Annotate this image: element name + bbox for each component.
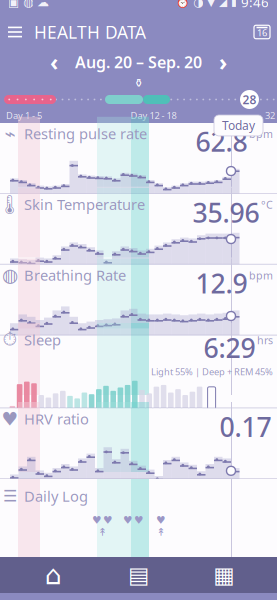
staticText: ›	[219, 47, 227, 77]
staticText: °C	[261, 198, 273, 212]
staticText: 28	[242, 91, 256, 107]
staticText: ⏱	[2, 331, 17, 349]
button[interactable]: ◍	[0, 265, 277, 335]
staticText: ↟	[156, 526, 165, 538]
staticText: hrs	[257, 333, 273, 347]
staticText: 🌡	[0, 194, 22, 215]
staticText: ◢	[219, 0, 227, 8]
staticText: ♥	[92, 514, 102, 526]
staticText: Skin Temperature	[24, 195, 145, 214]
staticText: ♥	[123, 514, 133, 526]
staticText: ☁	[37, 0, 49, 9]
staticText: ⌁	[4, 123, 15, 144]
staticText: 9:46	[241, 0, 269, 11]
staticText: ▮	[231, 0, 237, 8]
button[interactable]: Menu	[0, 15, 34, 49]
staticText: ⏰	[176, 0, 189, 8]
staticText: 62.8	[195, 124, 247, 159]
button[interactable]: Calendar	[196, 559, 252, 591]
staticText: 32	[265, 109, 275, 122]
staticText: 0.17	[219, 409, 271, 444]
button[interactable]: Health data charts	[110, 559, 166, 591]
staticText: ♥	[103, 514, 113, 526]
staticText: ▼	[207, 0, 215, 8]
button[interactable]: 🌡	[0, 194, 277, 265]
staticText: HEALTH DATA	[34, 20, 146, 43]
staticText: ♥	[134, 514, 144, 526]
staticText: ◍	[2, 265, 18, 286]
staticText: Sleep	[24, 330, 61, 349]
staticText: ▣	[8, 0, 19, 9]
button[interactable]: Home	[25, 559, 81, 591]
staticText: ▦	[213, 562, 234, 588]
button[interactable]: Previous period	[45, 51, 63, 73]
staticText: ☰	[3, 487, 17, 505]
staticText: ♥	[156, 514, 166, 526]
button[interactable]: ☰	[0, 479, 277, 557]
staticText: Daily Log	[24, 486, 88, 506]
staticText: ‹	[50, 47, 58, 77]
staticText: 16	[257, 27, 267, 39]
staticText: bpm	[249, 268, 273, 283]
staticText: ⌂	[45, 560, 62, 590]
staticText: Today	[222, 117, 255, 133]
staticText: ⚱	[133, 76, 143, 90]
staticText: ▤	[128, 562, 149, 588]
staticText: Day 1 - 5	[6, 109, 42, 122]
staticText: Day 12 - 18	[130, 109, 176, 122]
staticText: ♥	[1, 408, 18, 430]
button[interactable]: ⏱	[0, 335, 277, 408]
staticText: ↟	[98, 526, 107, 538]
staticText: 35.96	[192, 195, 259, 230]
staticText: 12.9	[195, 265, 247, 301]
staticText: Light 55% | Deep + REM 45%	[151, 365, 273, 378]
staticText: Resting pulse rate	[24, 124, 147, 143]
button[interactable]: Calendar	[243, 15, 277, 49]
staticText: ◍	[23, 0, 33, 9]
staticText: HRV ratio	[24, 409, 89, 428]
staticText: bpm	[249, 127, 273, 141]
button[interactable]: ♥	[0, 408, 277, 479]
staticText: ◑	[193, 0, 203, 9]
staticText: Breathing Rate	[24, 265, 126, 285]
button[interactable]: Next period	[214, 51, 232, 73]
button[interactable]: ⌁	[0, 123, 277, 194]
staticText: Aug. 20 – Sep. 20	[75, 51, 202, 73]
staticText: 6:29	[203, 330, 255, 365]
